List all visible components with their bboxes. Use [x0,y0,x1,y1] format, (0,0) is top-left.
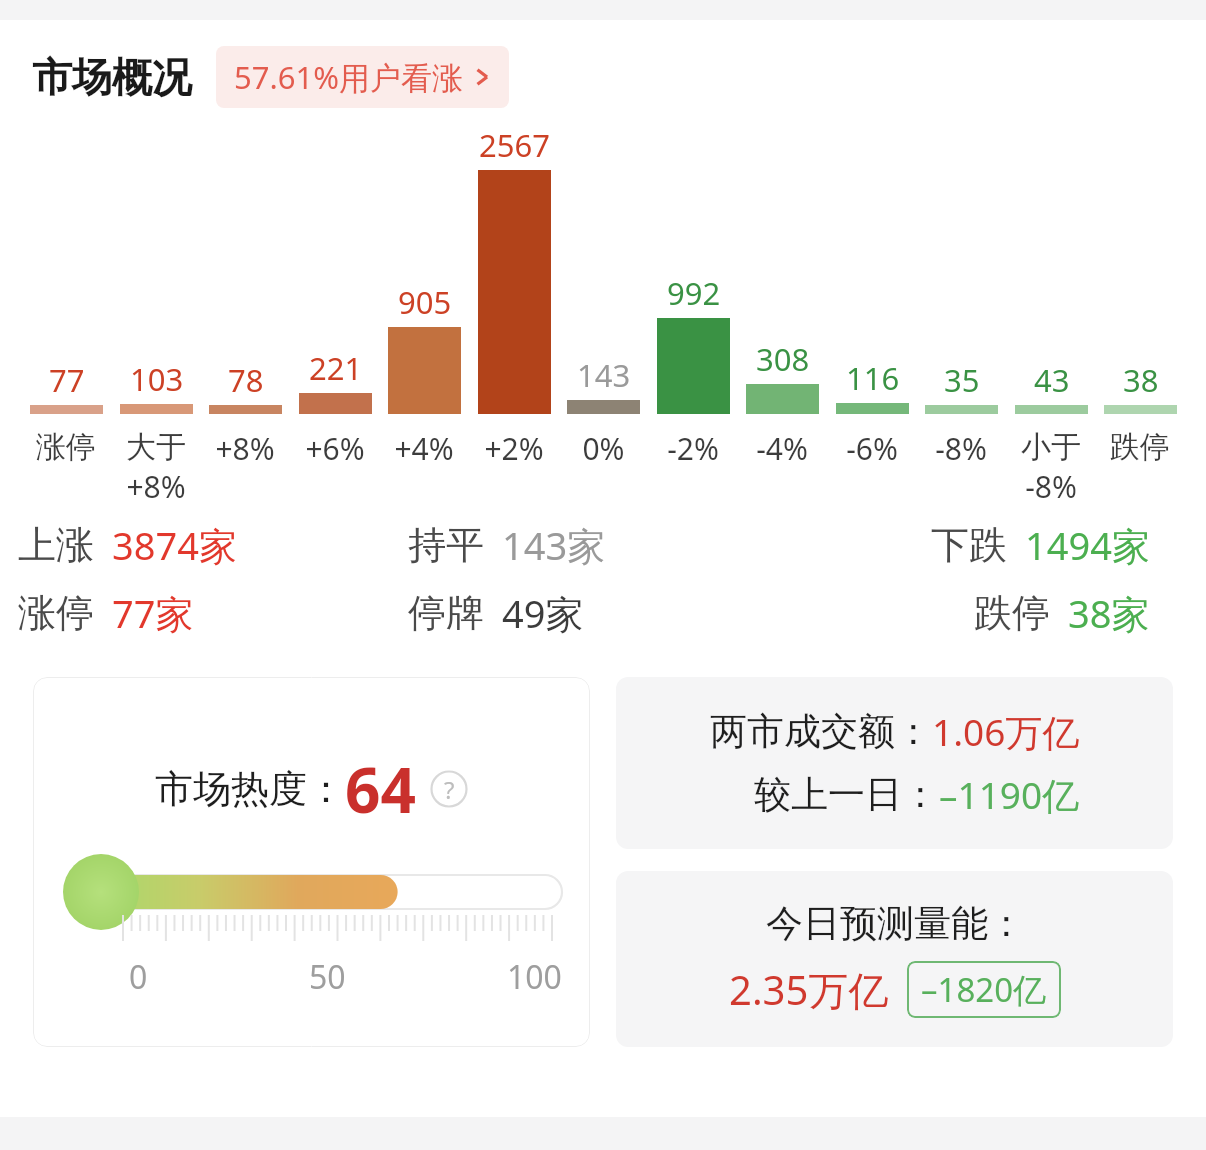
staticText: ? [444,773,455,806]
staticText: 持平 [408,521,484,569]
staticText: -8% [935,428,987,469]
staticText: -2% [667,428,719,469]
staticText: 0 [129,955,148,999]
staticText: 0% [582,428,625,469]
staticText: 143 [577,354,631,396]
staticText: +2% [484,428,544,469]
staticText: 905 [398,281,452,323]
staticText: 停牌 [408,589,484,637]
staticText: –1820亿 [921,967,1047,1012]
staticText: 2.35万亿 [729,962,889,1017]
staticText: 143家 [502,519,606,571]
button[interactable]: 今日预测量能： [616,871,1173,1047]
staticText: 1.06万亿 [932,706,1080,757]
button[interactable]: 两市成交额： [616,677,1173,849]
staticText: 308 [756,338,810,380]
staticText: 100 [507,955,562,999]
staticText: +6% [305,428,365,469]
staticText: +8% [126,466,186,507]
staticText: 57.61%用户看涨 [234,56,463,98]
staticText: 43 [1034,359,1070,401]
staticText: -6% [846,428,898,469]
staticText: 下跌 [931,521,1007,569]
staticText: 跌停 [974,589,1050,637]
staticText: 35 [944,359,980,401]
staticText: 77家 [112,587,194,639]
staticText: -8% [1025,466,1077,507]
staticText: 较上一日： [754,771,939,818]
staticText: 两市成交额： [710,708,932,755]
staticText: 221 [309,347,363,389]
staticText: 49家 [502,587,584,639]
staticText: +8% [215,428,275,469]
staticText: 1494家 [1025,519,1150,571]
staticText: 小于 [1021,428,1081,466]
staticText: 50 [309,955,346,999]
staticText: –1190亿 [939,769,1080,820]
button[interactable]: 帮助说明 [430,770,468,808]
staticText: 103 [130,358,184,400]
staticText: 市场热度： [155,765,345,813]
staticText: 2567 [479,124,550,166]
staticText: +4% [394,428,454,469]
staticText: 涨停 [18,589,94,637]
staticText: 38 [1123,359,1159,401]
staticText: 38家 [1068,587,1150,639]
staticText: -4% [756,428,808,469]
staticText: 涨停 [36,428,96,466]
staticText: 大于 [126,428,186,466]
staticText: 上涨 [18,521,94,569]
staticText: 77 [49,359,85,401]
staticText: 3874家 [112,519,237,571]
staticText: 116 [846,357,900,399]
staticText: 78 [228,359,264,401]
staticText: 992 [667,272,721,314]
button[interactable]: 市场热度： [33,677,590,1047]
staticText: 64 [345,747,416,831]
button[interactable]: 57.61%用户看涨 [216,46,509,108]
staticText: 跌停 [1110,428,1170,466]
staticText: 市场概况 [32,52,192,102]
staticText: 今日预测量能： [766,900,1025,947]
